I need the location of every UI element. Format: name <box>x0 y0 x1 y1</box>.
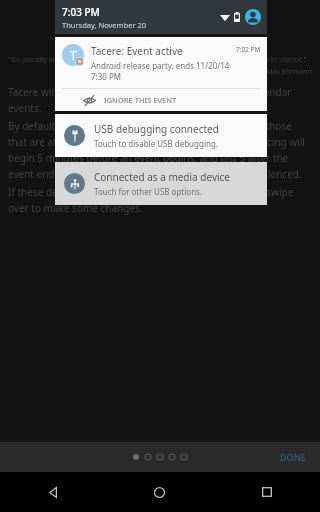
staticText: 7:02 PM <box>236 45 261 54</box>
staticText: DONE <box>280 451 306 463</box>
button[interactable]: IGNORE THIS EVENT <box>55 89 267 111</box>
button[interactable]: DONE <box>266 445 320 469</box>
staticText: - Max Ehrmann <box>8 67 312 77</box>
staticText: USB debugging connected <box>94 122 219 136</box>
staticText: Touch for other USB options. <box>94 186 203 197</box>
button[interactable]: Back <box>0 472 106 512</box>
staticText: T <box>70 47 77 63</box>
button[interactable]: USB debugging connected <box>55 114 267 157</box>
staticText: By default Tacere will silence during al… <box>8 119 312 180</box>
staticText: Thursday, November 20 <box>62 20 147 30</box>
staticText: Connected as a media device <box>94 170 230 184</box>
staticText: If these defaults work for you, you're a… <box>8 185 312 214</box>
button[interactable]: Connected as a media device <box>55 162 267 205</box>
staticText: IGNORE THIS EVENT <box>104 95 177 105</box>
button[interactable]: User profile <box>245 9 261 25</box>
button[interactable]: Home <box>106 472 213 512</box>
staticText: Tacere will automatically silence your p… <box>8 85 312 114</box>
staticText: Tacere: Event active <box>91 44 183 58</box>
button[interactable]: T <box>55 37 267 111</box>
staticText: 7:03 PM <box>62 5 100 19</box>
staticText: Android release party, ends 11/20/14 7:3… <box>91 60 236 82</box>
button[interactable]: Recent apps <box>213 472 320 512</box>
staticText: "Go placidly amid the noise and haste, a… <box>8 55 307 65</box>
staticText: Touch to disable USB debugging. <box>94 138 218 149</box>
